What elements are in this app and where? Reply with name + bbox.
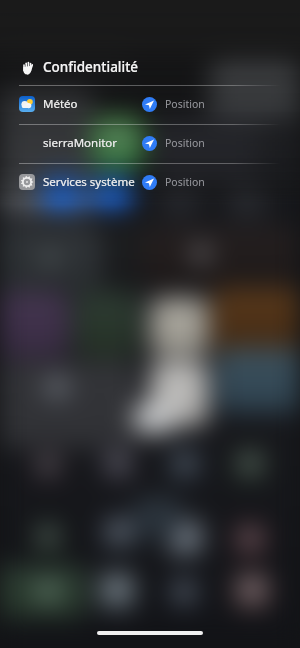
staticText: Météo [43,96,78,112]
other: Location [142,136,157,151]
button[interactable]: Confidentialité [0,56,300,78]
staticText: Confidentialité [43,58,139,76]
other: Location [142,175,157,190]
button[interactable]: Services système [0,166,300,198]
button[interactable]: sierraMonitor [0,127,300,159]
staticText: Position [165,136,205,150]
other: Location [142,97,157,112]
staticText: Position [165,175,205,189]
button[interactable]: Météo [0,88,300,120]
staticText: sierraMonitor [43,135,118,151]
staticText: Services système [43,174,135,190]
staticText: Position [165,97,205,111]
